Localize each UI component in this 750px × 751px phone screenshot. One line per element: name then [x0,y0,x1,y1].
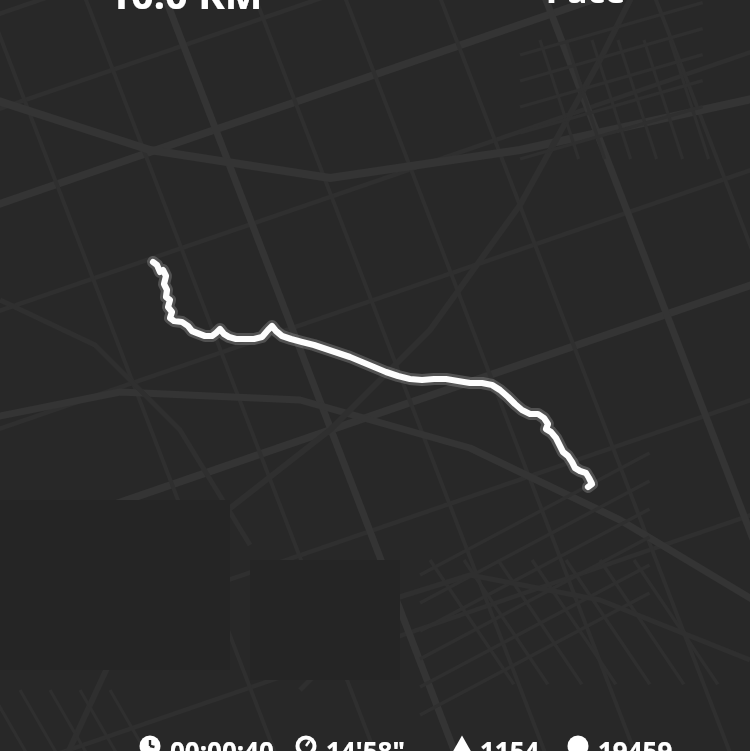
button[interactable]: Activity route map [0,0,750,751]
